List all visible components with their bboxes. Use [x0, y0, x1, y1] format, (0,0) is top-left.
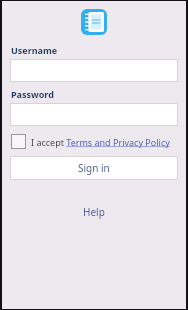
staticText: Username [11, 44, 58, 56]
other: Accept terms checkbox [11, 134, 26, 149]
staticText: Sign in [78, 161, 110, 175]
button[interactable]: App logo [81, 9, 107, 35]
button[interactable]: Text input [10, 103, 178, 126]
button[interactable]: Sign in [10, 156, 178, 180]
button[interactable]: Help [75, 202, 113, 222]
button[interactable]: Accept terms checkbox [11, 134, 177, 149]
staticText: Help [83, 205, 105, 219]
button[interactable]: Text input [10, 59, 178, 82]
staticText: Password [11, 88, 54, 100]
staticText: I accept Terms and Privacy Policy [31, 136, 170, 148]
